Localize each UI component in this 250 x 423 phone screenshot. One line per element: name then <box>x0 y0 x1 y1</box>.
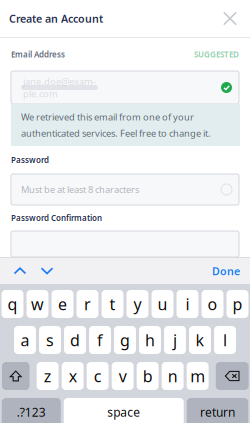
button[interactable]: e <box>51 290 73 318</box>
button[interactable]: a <box>14 326 36 354</box>
staticText: i <box>185 293 189 315</box>
staticText: k <box>195 329 204 351</box>
staticText: p <box>232 293 242 315</box>
button[interactable]: g <box>114 326 136 354</box>
staticText: a <box>20 329 29 351</box>
button[interactable]: u <box>152 290 173 318</box>
button[interactable]: n <box>162 362 184 390</box>
staticText: .?123 <box>17 404 46 420</box>
button[interactable]: c <box>87 362 109 390</box>
button[interactable]: Next field <box>36 258 58 284</box>
staticText: jane.doe@example.com <box>23 75 96 100</box>
staticText: return <box>200 404 235 420</box>
button[interactable]: f <box>89 326 111 354</box>
button[interactable]: s <box>39 326 61 354</box>
staticText: space <box>107 404 140 420</box>
staticText: d <box>70 329 80 351</box>
staticText: o <box>207 293 217 315</box>
staticText: s <box>46 329 54 351</box>
button[interactable]: d <box>64 326 86 354</box>
staticText: n <box>168 365 178 387</box>
button[interactable]: t <box>101 290 123 318</box>
button[interactable]: o <box>202 290 223 318</box>
button[interactable]: l <box>214 326 236 354</box>
staticText: j <box>173 329 177 351</box>
staticText: Done <box>212 264 240 278</box>
button[interactable]: b <box>137 362 159 390</box>
staticText: w <box>31 293 44 315</box>
button[interactable]: i <box>177 290 198 318</box>
button[interactable]: return <box>187 398 248 423</box>
button[interactable]: Previous field <box>9 258 31 284</box>
button[interactable]: .?123 <box>2 398 61 423</box>
button[interactable]: r <box>76 290 98 318</box>
staticText: x <box>69 365 77 387</box>
staticText: Email Address <box>11 49 65 60</box>
button[interactable]: h <box>139 326 161 354</box>
button[interactable]: x <box>62 362 84 390</box>
button[interactable]: Delete <box>216 362 249 390</box>
button[interactable]: w <box>26 290 48 318</box>
staticText: SUGGESTED <box>194 49 239 60</box>
staticText: q <box>7 293 17 315</box>
staticText: Create an Account <box>9 11 103 26</box>
staticText: We retrieved this email from one of your <box>21 111 194 123</box>
button[interactable]: m <box>187 362 209 390</box>
staticText: Must be at least 8 characters <box>21 183 139 196</box>
button[interactable]: space <box>64 398 184 423</box>
button[interactable]: k <box>189 326 211 354</box>
button[interactable]: v <box>112 362 134 390</box>
staticText: f <box>97 329 103 351</box>
button[interactable]: j <box>164 326 186 354</box>
button[interactable]: y <box>126 290 148 318</box>
staticText: u <box>157 293 167 315</box>
staticText: r <box>84 293 91 315</box>
staticText: m <box>190 365 205 387</box>
staticText: b <box>143 365 153 387</box>
staticText: h <box>145 329 155 351</box>
staticText: t <box>109 293 115 315</box>
staticText: l <box>223 329 227 351</box>
staticText: c <box>94 365 102 387</box>
button[interactable]: Shift <box>2 362 29 390</box>
button[interactable]: z <box>37 362 59 390</box>
button[interactable]: Done <box>212 258 240 284</box>
staticText: authenticated services. Feel free to cha… <box>21 127 211 139</box>
button[interactable]: Close <box>219 7 241 29</box>
staticText: Password <box>11 155 49 165</box>
staticText: z <box>44 365 52 387</box>
staticText: g <box>120 329 130 351</box>
button[interactable]: q <box>1 290 23 318</box>
staticText: y <box>133 293 141 315</box>
staticText: Password Confirmation <box>11 213 102 223</box>
staticText: v <box>119 365 127 387</box>
staticText: e <box>58 293 67 315</box>
button[interactable]: p <box>227 290 248 318</box>
